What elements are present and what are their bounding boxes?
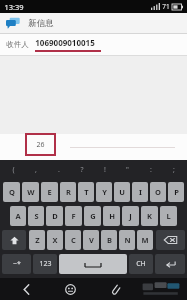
button[interactable]: 26 (25, 133, 56, 156)
staticText: U (119, 187, 125, 197)
staticText: Q (9, 187, 15, 197)
button[interactable]: Symbols (2, 254, 31, 274)
button[interactable]: F (65, 206, 82, 226)
staticText: M (141, 235, 149, 245)
button[interactable]: A (10, 206, 26, 226)
button[interactable]: J (122, 206, 139, 226)
button[interactable]: Back (4, 278, 48, 300)
staticText: Z (35, 235, 40, 245)
staticText: " (126, 165, 129, 175)
button[interactable]: Y (96, 182, 112, 202)
staticText: P (174, 187, 179, 197)
button[interactable]: V (83, 230, 99, 250)
button[interactable]: C (65, 230, 81, 250)
button[interactable]: N (119, 230, 135, 250)
staticText: I (139, 187, 142, 197)
staticText: 71 (162, 2, 170, 11)
staticText: H (109, 211, 115, 221)
button[interactable]: Numbers (33, 254, 57, 274)
staticText: . (58, 165, 60, 175)
button[interactable]: 收件人 (0, 34, 187, 55)
staticText: O (155, 187, 161, 197)
staticText: V (89, 235, 94, 245)
button[interactable]: ; (162, 160, 185, 180)
button[interactable]: E (41, 182, 58, 202)
staticText: 13:39 (4, 2, 24, 12)
staticText: N (124, 235, 131, 245)
button[interactable]: T (78, 182, 94, 202)
button[interactable]: D (46, 206, 63, 226)
staticText: : (150, 165, 152, 175)
button[interactable]: Attach (93, 278, 138, 300)
staticText: X (52, 235, 58, 245)
staticText: ! (104, 165, 106, 175)
staticText: B (107, 235, 112, 245)
button[interactable]: ( (2, 160, 24, 180)
staticText: , (35, 165, 37, 175)
button[interactable]: ! (93, 160, 116, 180)
button[interactable]: Language (129, 254, 153, 274)
button[interactable]: L (160, 206, 177, 226)
button[interactable]: Q (3, 182, 20, 202)
staticText: W (27, 187, 35, 197)
staticText: D (52, 211, 58, 221)
button[interactable]: " (116, 160, 139, 180)
button[interactable]: G (84, 206, 101, 226)
staticText: 1069009010015 (35, 37, 95, 48)
staticText: 26 (36, 140, 45, 150)
staticText: Y (102, 187, 107, 197)
button[interactable]: B (101, 230, 117, 250)
staticText: C (71, 235, 76, 245)
button[interactable]: R (60, 182, 76, 202)
button[interactable]: O (150, 182, 166, 202)
staticText: ? (80, 165, 84, 175)
button[interactable]: I (132, 182, 148, 202)
staticText: 新信息 (28, 18, 54, 29)
staticText: R (66, 187, 71, 197)
staticText: ( (12, 165, 15, 175)
staticText: ~* (13, 259, 21, 269)
staticText: K (147, 211, 152, 221)
button[interactable]: 新信息 (0, 13, 187, 33)
staticText: E (47, 187, 52, 197)
button[interactable]: , (24, 160, 47, 180)
button[interactable]: ? (70, 160, 93, 180)
button[interactable]: M (137, 230, 153, 250)
button[interactable]: X (47, 230, 63, 250)
staticText: 收件人 (6, 40, 29, 49)
button[interactable]: P (168, 182, 184, 202)
button[interactable]: Backspace (156, 230, 185, 250)
button[interactable]: Shift (2, 230, 26, 250)
staticText: G (90, 211, 96, 221)
button[interactable] (0, 134, 187, 160)
staticText: ; (173, 165, 175, 175)
staticText: 123 (39, 259, 52, 269)
button[interactable]: W (22, 182, 39, 202)
button[interactable]: U (114, 182, 130, 202)
button[interactable]: : (139, 160, 162, 180)
button[interactable]: Enter (155, 254, 185, 274)
button[interactable]: H (103, 206, 120, 226)
button[interactable]: S (28, 206, 44, 226)
staticText: CH (136, 259, 146, 269)
button[interactable]: Z (29, 230, 45, 250)
staticText: J (129, 211, 132, 221)
staticText: T (84, 187, 89, 197)
button[interactable]: K (141, 206, 158, 226)
staticText: L (166, 211, 171, 221)
staticText: S (34, 211, 39, 221)
staticText: A (15, 211, 21, 221)
staticText: F (71, 211, 76, 221)
button[interactable]: Emoji (48, 278, 93, 300)
button[interactable]: Space (59, 254, 127, 274)
